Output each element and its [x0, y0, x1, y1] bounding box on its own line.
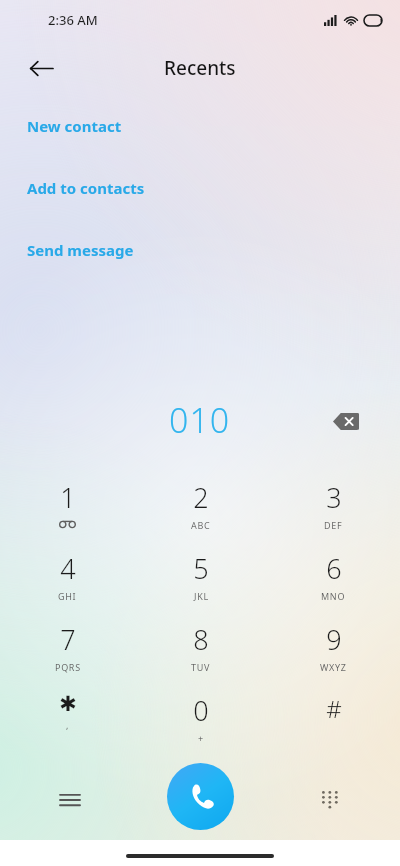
staticText: DEF — [324, 519, 343, 531]
button[interactable]: 0 — [134, 683, 267, 754]
staticText: 9 — [326, 621, 342, 658]
staticText: 010 — [169, 397, 231, 443]
staticText: + — [198, 732, 204, 744]
button[interactable]: 1 — [1, 470, 134, 541]
staticText: MNO — [321, 590, 346, 602]
button[interactable]: More options — [46, 776, 94, 824]
staticText: # — [326, 692, 342, 725]
button[interactable]: 2 — [134, 470, 267, 541]
staticText: PQRS — [55, 661, 81, 673]
staticText: 7 — [60, 621, 76, 658]
button[interactable]: Dialpad — [306, 776, 354, 824]
button[interactable]: 3 — [267, 470, 400, 541]
staticText: JKL — [194, 590, 209, 602]
staticText: 0 — [193, 692, 209, 729]
button[interactable]: Send message — [0, 236, 400, 264]
staticText: 4 — [60, 550, 76, 587]
staticText: 6 — [326, 550, 342, 587]
button[interactable]: # — [267, 683, 400, 754]
button[interactable]: 5 — [134, 541, 267, 612]
staticText: 3 — [326, 479, 342, 516]
staticText: New contact — [27, 116, 122, 136]
staticText: Add to contacts — [27, 178, 145, 198]
button[interactable]: 6 — [267, 541, 400, 612]
button[interactable]: 9 — [267, 612, 400, 683]
button[interactable]: Call — [167, 763, 234, 830]
button[interactable]: New contact — [0, 112, 400, 140]
button[interactable]: Back — [18, 45, 64, 91]
staticText: 5 — [193, 550, 209, 587]
staticText: , — [66, 719, 70, 731]
staticText: WXYZ — [320, 661, 347, 673]
staticText: 8 — [193, 621, 209, 658]
button[interactable]: Add to contacts — [0, 174, 400, 202]
staticText: GHI — [58, 590, 77, 602]
button[interactable]: ✱ — [1, 683, 134, 754]
staticText: Send message — [27, 240, 134, 260]
staticText: Recents — [164, 55, 236, 81]
button[interactable]: 7 — [1, 612, 134, 683]
button[interactable]: 4 — [1, 541, 134, 612]
staticText: ✱ — [59, 692, 77, 716]
staticText: 2:36 AM — [48, 11, 98, 29]
staticText: 2 — [193, 479, 209, 516]
staticText: TUV — [191, 661, 211, 673]
button[interactable]: 8 — [134, 612, 267, 683]
staticText: 1 — [60, 479, 76, 516]
staticText: ABC — [191, 519, 211, 531]
button[interactable]: Backspace — [325, 400, 367, 442]
